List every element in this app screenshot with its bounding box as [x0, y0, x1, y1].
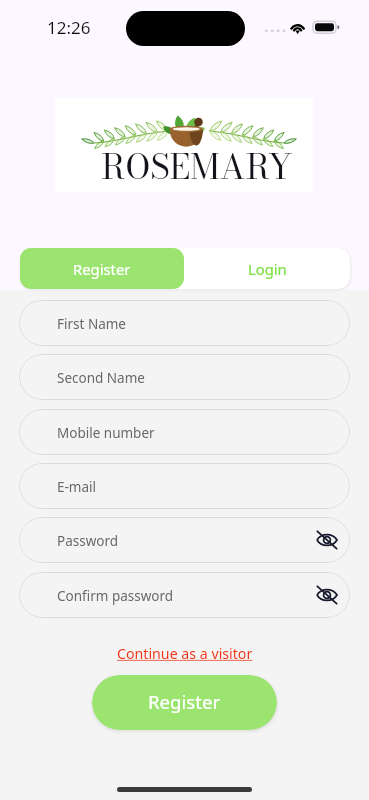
staticText: Register — [148, 689, 221, 714]
button[interactable]: First Name — [19, 300, 350, 346]
button[interactable]: Register — [20, 248, 184, 289]
staticText: Login — [248, 259, 287, 279]
button[interactable]: Password — [19, 517, 350, 563]
button[interactable]: Second Name — [19, 354, 350, 400]
staticText: Confirm password — [57, 587, 174, 605]
button[interactable]: E-mail — [19, 463, 350, 509]
staticText: First Name — [57, 315, 126, 333]
button[interactable]: Toggle password visibility — [315, 583, 339, 607]
button[interactable]: Mobile number — [19, 409, 350, 455]
button[interactable]: Continue as a visitor — [117, 644, 253, 663]
staticText: 12:26 — [47, 16, 91, 39]
button[interactable]: Toggle password visibility — [315, 528, 339, 552]
staticText: Register — [73, 259, 131, 279]
staticText: Password — [57, 532, 119, 550]
button[interactable]: Confirm password — [19, 572, 350, 618]
staticText: Mobile number — [57, 424, 155, 442]
other: Rosemary logo — [55, 98, 313, 192]
button[interactable]: Login — [184, 248, 350, 289]
staticText: E-mail — [57, 478, 97, 496]
staticText: Second Name — [57, 369, 145, 387]
button[interactable]: Register — [92, 675, 277, 730]
staticText: ROSEMARY — [101, 141, 293, 192]
